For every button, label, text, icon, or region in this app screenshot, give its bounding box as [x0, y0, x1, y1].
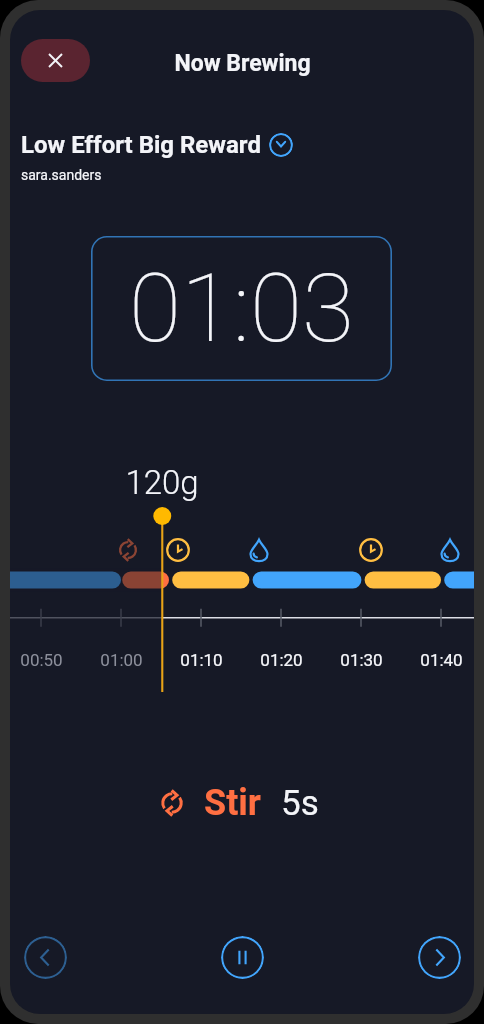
button[interactable]: Pause [221, 936, 264, 979]
staticText: 01:40 [420, 650, 463, 670]
button[interactable]: Close [21, 39, 90, 82]
staticText: 01:03 [129, 253, 354, 364]
button[interactable]: Show recipe details [269, 133, 293, 157]
staticText: Stir [204, 782, 261, 824]
staticText: 00:50 [20, 650, 63, 670]
staticText: 01:00 [100, 650, 143, 670]
staticText: 120g [125, 463, 199, 502]
button[interactable]: Next step [418, 936, 461, 979]
staticText: 5s [281, 783, 319, 824]
staticText: 01:30 [340, 650, 383, 670]
staticText: 01:10 [180, 650, 223, 670]
button[interactable]: Previous step [24, 936, 67, 979]
staticText: Now Brewing [174, 50, 311, 77]
staticText: sara.sanders [21, 167, 102, 183]
button[interactable]: Stir [158, 782, 319, 824]
staticText: Low Effort Big Reward [21, 131, 261, 159]
staticText: 01:20 [260, 650, 303, 670]
